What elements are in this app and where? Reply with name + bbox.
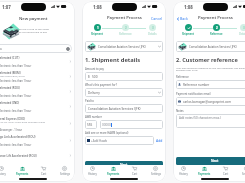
staticText: +Add Hawb [91,139,108,143]
staticText: 500 [92,75,98,79]
staticText: Cart [41,172,47,176]
button[interactable]: Settings [236,165,245,176]
button[interactable]: History [0,165,12,176]
staticText: Payment notification email [176,92,211,96]
button[interactable]: Cancel [151,16,163,21]
button[interactable]: Cart [215,165,236,176]
staticText: Accelerated (IND) [0,101,20,105]
button[interactable]: Add [156,138,163,143]
button[interactable]: Reference number [176,80,245,89]
staticText: Federal Express (DXO) [0,117,26,121]
button[interactable]: Add notes (50 characters max.) [176,114,245,128]
button[interactable]: Delivery [85,88,163,97]
staticText: Reference [176,75,189,79]
button[interactable]: Alliance Lift Accelerated (ROU) [0,148,75,163]
button[interactable]: Consolidation Aviation Services (JFK) [85,41,163,52]
staticText: Electronic: less than 1 hour [0,143,32,146]
staticText: Your own personal reference so you can r… [176,66,245,72]
button[interactable]: 555 [85,120,97,129]
staticText: Delivery [88,91,158,95]
button[interactable]: Accelerated (MEM) [0,69,75,84]
staticText: Shipment [91,32,103,36]
staticText: Add one or more HAWB (optional) [85,131,129,135]
staticText: Back [180,16,188,21]
staticText: 2 [216,26,218,30]
staticText: History [0,172,6,176]
staticText: Next [120,163,128,167]
staticText: Accelerated (ROU) [0,86,20,90]
button[interactable]: Payments [103,165,124,176]
button[interactable]: Accelerated (ROU) [0,84,75,99]
button[interactable]: Settings [54,165,75,176]
button[interactable]: Payments [12,165,33,176]
button[interactable]: +Add Hawb [85,136,154,145]
button[interactable]: Federal Express (DXO) [0,114,75,133]
button[interactable]: Next [85,161,163,169]
staticText: Details [148,32,157,36]
staticText: Alliance Lift Accelerated (ROU) [0,154,37,158]
staticText: carlos.barragan@cargosprint.com [183,100,245,104]
staticText: Consolidation Aviation Services (JFK) [98,45,158,49]
staticText: Reference [210,32,223,36]
staticText: Settings [60,172,70,176]
staticText: Electronic: less than 1 hour [0,109,32,112]
staticText: New payment [19,16,48,22]
staticText: 3 [152,26,154,30]
button[interactable]: Cart [124,165,145,176]
button[interactable]: Cart [33,165,54,176]
staticText: History [88,172,97,176]
staticText: Accelerated (MEM) [0,71,21,75]
staticText: Electronic: less than 1 hour [0,79,32,82]
staticText: Electronic: less than 1 hour [0,64,32,67]
staticText: Payment Process [107,15,142,21]
staticText: Consolidation Aviation Services (JFK) [88,107,141,111]
staticText: 1:08 [184,4,193,10]
staticText: Cargo Link Accelerated (ROU) [0,135,36,139]
staticText: Electronic: less than 1 hour [0,94,32,97]
button[interactable]: Consolidation Aviation Services (JFK) [176,41,245,52]
button[interactable]: Accelerated (CUT) [0,54,75,69]
staticText: 1:07 [2,4,11,10]
button[interactable]: Cargo Link Accelerated (ROU) [0,133,75,148]
staticText: Add notes (50 characters max.) [179,116,221,120]
staticText: History [179,172,188,176]
staticText: Reference number [183,83,245,87]
staticText: Ste. 5280 Airtech Blvd, Ste 56 [0,75,25,78]
button[interactable]: 00000 [100,120,163,129]
staticText: Reference [119,32,132,36]
staticText: Shipment [182,32,194,36]
button[interactable]: History [82,165,103,176]
button[interactable]: History [173,165,194,176]
staticText: Notes [176,109,184,113]
button[interactable]: Next [176,157,245,165]
staticText: Payments [198,172,211,176]
staticText: 555 [87,123,93,127]
button[interactable]: Aa [0,44,72,53]
staticText: 2 [125,26,127,30]
staticText: Amount to pay [85,67,105,71]
button[interactable]: Back [176,16,188,21]
button[interactable]: Settings [145,165,166,176]
button[interactable]: carlos.barragan@cargosprint.com [176,97,245,106]
staticText: 1. Shipment details [85,56,141,64]
staticText: 00000 [102,123,111,127]
staticText: 1:08 [93,4,102,10]
staticText: Cart [132,172,138,176]
staticText: Paid to [85,99,94,103]
staticText: Messenger - 1 hour [0,128,23,131]
button[interactable]: $ [85,72,163,81]
staticText: Payment Process [198,15,233,21]
staticText: Consolidation Aviation Services (JFK) [189,45,245,49]
staticText: Next [211,159,219,163]
staticText: Aa [0,47,66,51]
button[interactable]: Payments [194,165,215,176]
staticText: Payments [16,172,29,176]
staticText: 1 [97,26,99,30]
staticText: AWB number [85,115,102,119]
button[interactable]: Accelerated (IND) [0,99,75,114]
staticText: FL BL20 472 North Access Road Southwest … [0,121,46,127]
staticText: Details [239,32,245,36]
staticText: Settings [151,172,161,176]
button[interactable]: Consolidation Aviation Services (JFK) [85,104,163,113]
staticText: Payments [107,172,120,176]
